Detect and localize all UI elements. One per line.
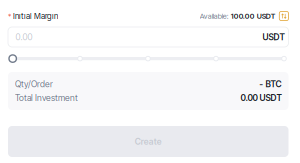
staticText: Available: [200,12,231,20]
staticText: USDT [262,32,284,42]
staticText: Initial Margin [11,11,58,21]
staticText: Create [135,136,162,147]
staticText: * [8,12,11,20]
button[interactable]: Transfer funds [276,11,288,21]
staticText: 100.00 USDT [231,12,276,20]
staticText: 0.00 USDT [240,93,281,103]
staticText: Total Investment [15,93,78,103]
staticText: 0.00 [15,32,32,42]
staticText: Qty/Order [15,79,53,89]
staticText: - BTC [259,79,281,89]
